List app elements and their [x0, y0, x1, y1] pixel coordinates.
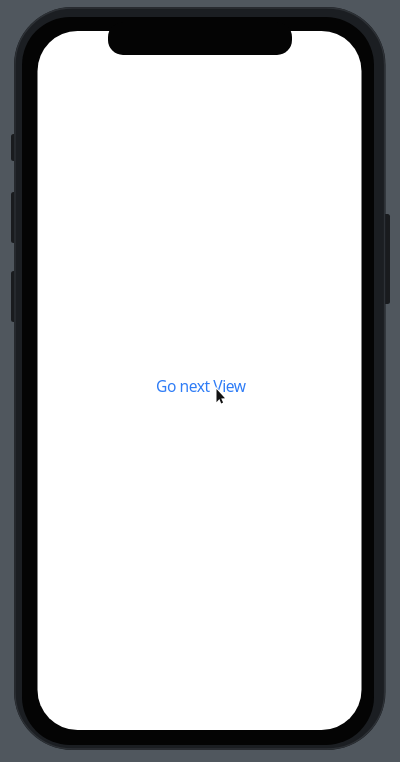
staticText: Go next View [156, 375, 246, 396]
button[interactable]: Go next View [150, 371, 252, 400]
